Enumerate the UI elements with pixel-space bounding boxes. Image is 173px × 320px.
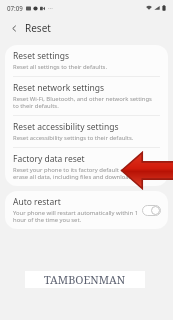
staticText: Auto restart xyxy=(13,197,61,207)
staticText: Reset xyxy=(25,21,51,35)
staticText: Reset all settings to their defaults. xyxy=(13,63,107,70)
button[interactable]: Back xyxy=(6,20,22,36)
button[interactable]: Factory data reset xyxy=(5,148,168,186)
button[interactable]: Auto restart toggle xyxy=(142,205,161,216)
staticText: TAMBOENMAN xyxy=(44,272,126,287)
button[interactable]: Reset network settings xyxy=(5,77,168,115)
staticText: Reset Wi-Fi, Bluetooth, and other networ… xyxy=(13,95,158,109)
staticText: ··· xyxy=(48,4,53,12)
staticText: Reset settings xyxy=(13,51,69,61)
button[interactable]: Reset accessibility settings xyxy=(5,116,168,147)
button[interactable]: Reset settings xyxy=(5,45,168,76)
staticText: Your phone will restart automatically wi… xyxy=(13,209,138,223)
staticText: Reset network settings xyxy=(13,83,105,93)
staticText: 07:09 xyxy=(7,4,23,12)
button[interactable]: Auto restart xyxy=(5,191,168,229)
staticText: Reset accessibility settings xyxy=(13,122,119,132)
staticText: Reset your phone to its factory default … xyxy=(13,166,158,180)
staticText: Reset accessibility settings to their de… xyxy=(13,134,134,141)
staticText: Factory data reset xyxy=(13,154,85,164)
